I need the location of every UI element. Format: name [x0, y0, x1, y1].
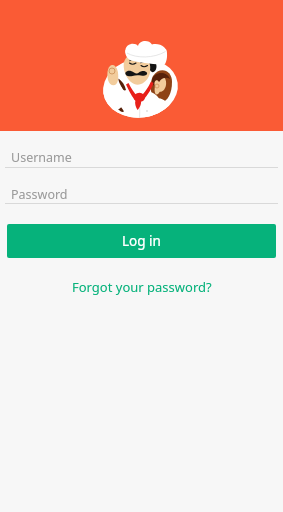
staticText: Password [11, 186, 68, 203]
button[interactable]: Forgot your password? [0, 276, 283, 298]
staticText: Log in [122, 232, 161, 250]
staticText: Username [11, 149, 72, 166]
staticText: Forgot your password? [72, 278, 212, 296]
button[interactable]: Log in [7, 224, 276, 258]
